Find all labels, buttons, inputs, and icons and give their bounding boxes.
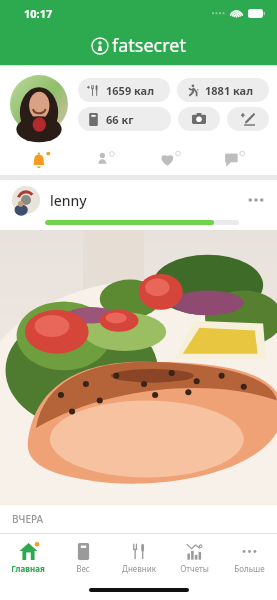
- button[interactable]: 66 кг: [78, 107, 171, 131]
- staticText: Отчеты: [180, 563, 209, 574]
- staticText: Вес: [76, 563, 90, 574]
- button[interactable]: [10, 75, 68, 133]
- other: More options: [247, 195, 265, 205]
- button[interactable]: 1659 кал: [78, 78, 170, 102]
- staticText: Дневник: [122, 563, 156, 574]
- staticText: ВЧЕРА: [12, 512, 44, 526]
- button[interactable]: Camera: [178, 107, 220, 131]
- staticText: fatsecret: [112, 33, 186, 58]
- button[interactable]: Likes: [149, 142, 193, 175]
- button[interactable]: Отчеты: [167, 541, 221, 574]
- staticText: 1659 кал: [106, 83, 154, 98]
- staticText: Больше: [234, 563, 265, 574]
- button[interactable]: lenny: [0, 180, 277, 220]
- button[interactable]: Comments: [213, 142, 257, 175]
- button[interactable]: Больше: [222, 541, 276, 574]
- button[interactable]: Главная: [1, 541, 55, 574]
- staticText: 10:17: [24, 6, 53, 21]
- button[interactable]: Дневник: [112, 541, 166, 574]
- staticText: 1881 кал: [205, 83, 253, 98]
- staticText: lenny: [50, 191, 87, 210]
- staticText: 66 кг: [106, 112, 134, 127]
- button[interactable]: [0, 230, 277, 505]
- button[interactable]: Notifications: [20, 142, 64, 175]
- button[interactable]: Friends: [84, 142, 128, 175]
- staticText: Главная: [11, 563, 45, 574]
- button[interactable]: 1881 кал: [177, 78, 269, 102]
- button[interactable]: Edit: [227, 107, 269, 131]
- button[interactable]: Вес: [56, 541, 110, 574]
